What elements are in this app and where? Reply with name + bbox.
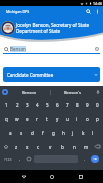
staticText: c <box>37 144 40 150</box>
staticText: 6 <box>56 102 59 108</box>
button[interactable]: k <box>78 126 88 140</box>
button[interactable]: f <box>38 126 48 140</box>
staticText: r <box>36 116 38 122</box>
button[interactable]: Voice search <box>95 89 101 95</box>
staticText: x <box>26 144 29 150</box>
staticText: Michigan DPS <box>6 9 30 14</box>
staticText: Benson's <box>64 90 81 95</box>
button[interactable]: Backspace <box>92 140 103 153</box>
staticText: n <box>73 144 76 150</box>
staticText: 5 <box>46 102 49 108</box>
staticText: b <box>61 144 64 150</box>
button[interactable]: c <box>33 140 44 153</box>
button[interactable]: 2 <box>12 98 22 112</box>
staticText: 8 <box>76 102 79 108</box>
button[interactable]: v <box>44 140 56 153</box>
button[interactable]: 6 <box>52 98 62 112</box>
button[interactable]: u <box>62 112 72 126</box>
button[interactable]: h <box>58 126 68 140</box>
staticText: v <box>49 144 52 150</box>
button[interactable]: Home <box>46 171 57 182</box>
button[interactable]: Voice input <box>24 153 34 165</box>
staticText: f <box>42 130 44 136</box>
staticText: s <box>20 130 23 136</box>
staticText: Department of State <box>16 28 61 34</box>
button[interactable]: p <box>92 112 102 126</box>
staticText: ?123 <box>4 157 12 162</box>
button[interactable]: x <box>22 140 33 153</box>
other: Search <box>3 46 9 52</box>
staticText: q <box>5 116 8 122</box>
button[interactable]: , <box>15 153 24 165</box>
button[interactable]: 8 <box>72 98 82 112</box>
button[interactable]: Shift <box>0 140 11 153</box>
button[interactable]: r <box>32 112 42 126</box>
button[interactable]: Benson <box>8 86 50 98</box>
button[interactable]: 0 <box>92 98 102 112</box>
staticText: 1 <box>5 102 8 108</box>
button[interactable]: . <box>78 153 91 165</box>
staticText: a <box>9 130 12 136</box>
staticText: k <box>82 130 85 136</box>
button[interactable]: q <box>1 112 12 126</box>
staticText: . <box>84 156 86 162</box>
staticText: u <box>66 116 69 122</box>
button[interactable]: Recents <box>75 171 86 182</box>
staticText: e <box>26 116 29 122</box>
button[interactable]: Candidate Committee <box>3 67 100 82</box>
button[interactable]: ?123 <box>0 153 15 165</box>
staticText: z <box>15 144 18 150</box>
button[interactable]: y <box>52 112 62 126</box>
staticText: 7 <box>66 102 69 108</box>
staticText: w <box>15 116 19 122</box>
button[interactable]: 7 <box>62 98 72 112</box>
button[interactable]: t <box>42 112 52 126</box>
staticText: Jocelyn Benson, Secretary of State <box>16 22 89 28</box>
staticText: g <box>52 130 55 136</box>
button[interactable]: i <box>72 112 82 126</box>
button[interactable]: z <box>11 140 22 153</box>
staticText: 0 <box>96 102 99 108</box>
button[interactable]: l <box>88 126 98 140</box>
staticText: j <box>72 130 74 136</box>
button[interactable]: s <box>16 126 27 140</box>
button[interactable]: m <box>80 140 92 153</box>
button[interactable]: 1 <box>1 98 12 112</box>
staticText: Candidate Committee <box>7 72 54 78</box>
staticText: , <box>19 156 21 162</box>
staticText: Benson <box>10 46 26 52</box>
staticText: o <box>86 116 89 122</box>
button[interactable]: o <box>82 112 92 126</box>
staticText: i <box>76 116 78 122</box>
button[interactable]: d <box>27 126 38 140</box>
button[interactable]: n <box>68 140 80 153</box>
button[interactable]: a <box>5 126 16 140</box>
staticText: t <box>46 116 48 122</box>
staticText: m <box>84 144 89 150</box>
button[interactable]: 5 <box>42 98 52 112</box>
button[interactable]: Enter <box>91 155 99 163</box>
staticText: Benson <box>22 90 37 95</box>
button[interactable]: e <box>22 112 32 126</box>
staticText: 4 <box>36 102 39 108</box>
button[interactable]: Back <box>18 171 29 182</box>
button[interactable]: 4 <box>32 98 42 112</box>
button[interactable]: w <box>12 112 22 126</box>
staticText: 9 <box>86 102 89 108</box>
staticText: d <box>31 130 34 136</box>
button[interactable]: Clear <box>94 46 100 52</box>
button[interactable]: Benson's <box>51 86 93 98</box>
button[interactable]: 3 <box>22 98 32 112</box>
button[interactable]: b <box>56 140 68 153</box>
button[interactable]: 9 <box>82 98 92 112</box>
button[interactable]: Search <box>84 7 93 16</box>
staticText: p <box>96 116 99 122</box>
button[interactable]: g <box>48 126 58 140</box>
staticText: 14:46 <box>93 1 102 6</box>
staticText: l <box>92 130 94 136</box>
staticText: 3 <box>26 102 29 108</box>
staticText: y <box>56 116 59 122</box>
button[interactable]: More options <box>93 7 102 16</box>
button[interactable]: j <box>68 126 78 140</box>
